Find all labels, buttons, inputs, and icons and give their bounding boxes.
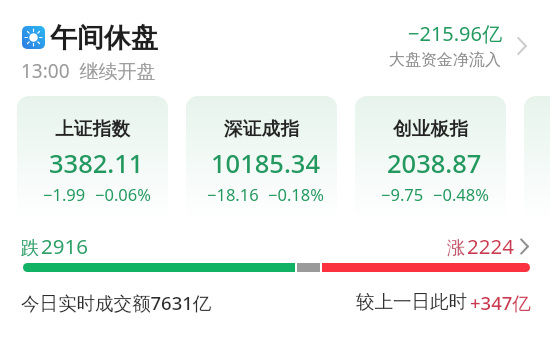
staticText: 午间休盘 [50, 21, 158, 55]
staticText: 大盘资金净流入 [389, 50, 501, 70]
button[interactable]: Market status [22, 26, 45, 49]
staticText: 跌 [21, 237, 39, 260]
staticText: −0.48% [433, 183, 489, 205]
button[interactable]: More up down data [514, 236, 535, 257]
staticText: 涨 [447, 237, 465, 260]
button[interactable]: 创业板指 [355, 96, 506, 220]
staticText: −0.18% [268, 183, 324, 205]
button[interactable]: More market data [510, 34, 534, 58]
staticText: 较上一日此时 [356, 290, 467, 313]
button[interactable]: −215.96亿 [380, 20, 510, 70]
staticText: +347亿 [470, 290, 531, 315]
staticText: 创业板指 [393, 117, 469, 140]
staticText: 2224 [467, 232, 514, 260]
button[interactable]: 涨 [447, 232, 514, 260]
staticText: −215.96亿 [408, 20, 502, 47]
staticText: −9.75 [381, 183, 424, 205]
staticText: −1.99 [43, 183, 86, 205]
button[interactable]: 科创50 [524, 96, 550, 220]
staticText: 2916 [41, 232, 88, 260]
button[interactable]: 上证指数 [17, 96, 168, 220]
staticText: 2038.87 [387, 146, 482, 181]
staticText: 13:00 继续开盘 [21, 58, 156, 84]
staticText: −18.16 [207, 183, 259, 205]
button[interactable]: 跌 [21, 232, 88, 260]
staticText: 今日实时成交额7631亿 [21, 290, 212, 315]
staticText: −0.06% [95, 183, 151, 205]
button[interactable]: 深证成指 [186, 96, 337, 220]
staticText: 10185.34 [211, 146, 321, 181]
button[interactable]: 午间休盘 [50, 21, 158, 55]
staticText: 深证成指 [224, 117, 300, 140]
staticText: 上证指数 [55, 117, 131, 140]
staticText: 3382.11 [49, 146, 144, 181]
